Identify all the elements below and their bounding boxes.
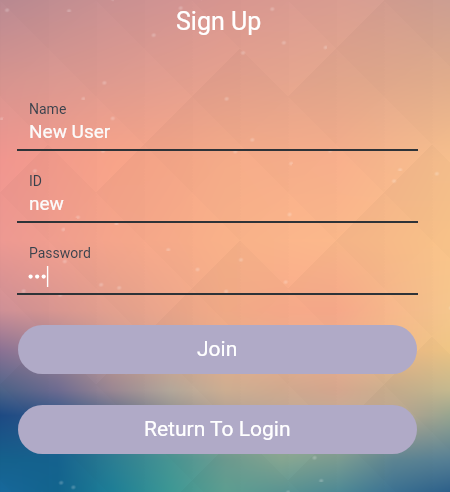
staticText: Return To Login	[144, 417, 291, 442]
staticText: new	[29, 192, 64, 214]
button[interactable]: Join	[18, 325, 417, 374]
staticText: Password	[29, 245, 91, 261]
staticText: ID	[29, 173, 42, 189]
staticText: Sign Up	[176, 7, 262, 36]
staticText: Join	[197, 337, 238, 362]
staticText: New User	[29, 120, 111, 142]
button[interactable]: Return To Login	[18, 405, 417, 454]
staticText: Name	[29, 101, 67, 117]
